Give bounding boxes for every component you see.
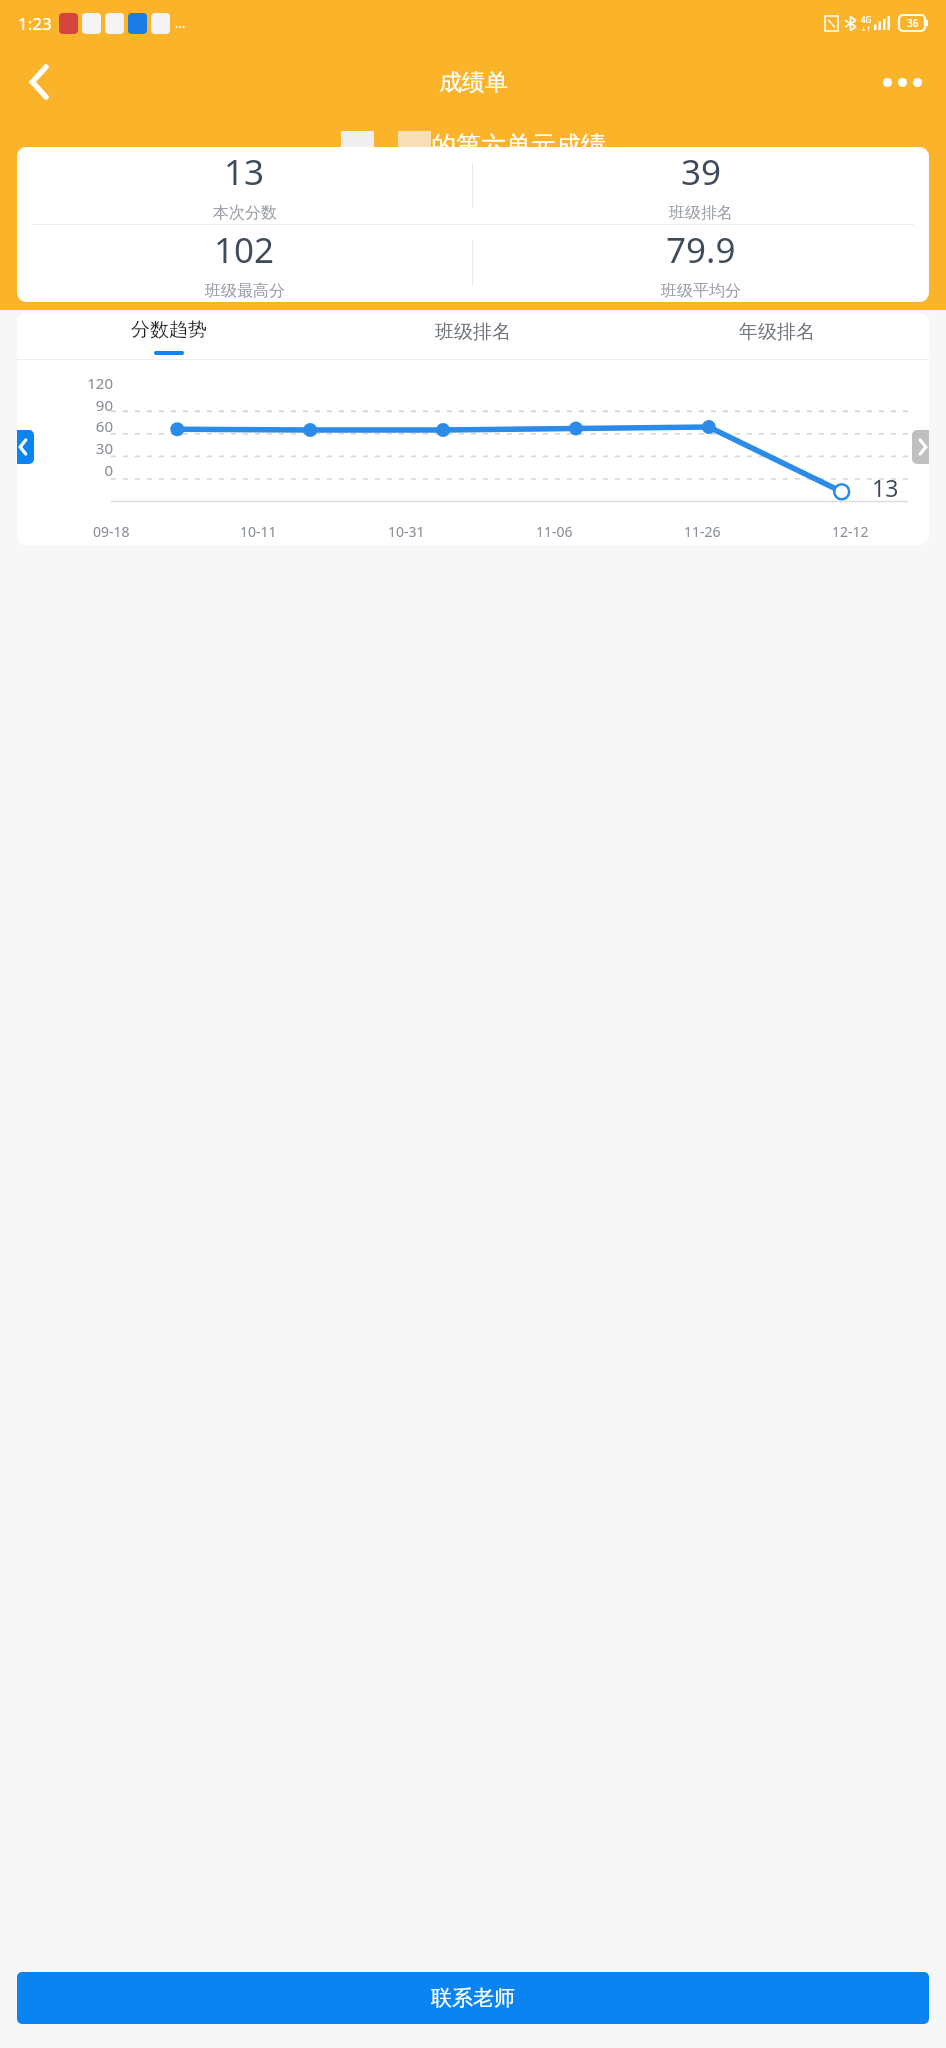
staticText: 年级排名 <box>739 320 815 344</box>
staticText: 10-11 <box>240 522 277 541</box>
button[interactable]: Back <box>14 57 64 107</box>
staticText: 120 <box>87 373 113 393</box>
staticText: 12-12 <box>832 522 869 541</box>
staticText: … <box>175 14 186 32</box>
staticText: 班级最高分 <box>205 281 285 301</box>
staticText: 0 <box>104 460 113 480</box>
staticText: 60 <box>95 416 113 436</box>
button[interactable]: Next <box>912 430 929 464</box>
button[interactable]: 39 <box>473 147 929 224</box>
staticText: 班级排名 <box>669 203 733 223</box>
staticText: 4G <box>861 14 872 25</box>
button[interactable]: 年级排名 <box>625 313 929 359</box>
staticText: 班级平均分 <box>661 281 741 301</box>
button[interactable]: 79.9 <box>473 225 929 302</box>
staticText: 11-26 <box>684 522 721 541</box>
staticText: 班级排名 <box>435 320 511 344</box>
staticText: 10-31 <box>388 522 425 541</box>
staticText: 成绩单 <box>439 68 508 97</box>
button[interactable]: 102 <box>17 225 472 302</box>
staticText: 13 <box>224 148 265 196</box>
staticText: 1:23 <box>18 12 52 35</box>
button[interactable]: 联系老师 <box>17 1972 929 2024</box>
staticText: 11-06 <box>536 522 573 541</box>
staticText: 本次分数 <box>213 203 277 223</box>
button[interactable]: 13 <box>17 147 472 224</box>
staticText: 79.9 <box>666 226 736 274</box>
button[interactable]: 分数趋势 <box>17 313 321 359</box>
staticText: 36 <box>907 16 919 30</box>
staticText: ↓↑ <box>861 25 872 32</box>
staticText: 102 <box>214 226 275 274</box>
staticText: 的第六单元成绩 <box>431 130 606 161</box>
staticText: 90 <box>95 395 113 415</box>
staticText: 分数趋势 <box>131 318 207 342</box>
staticText: 39 <box>681 148 722 196</box>
staticText: 09-18 <box>93 522 130 541</box>
staticText: 联系老师 <box>431 1985 515 2011</box>
button[interactable]: 班级排名 <box>321 313 625 359</box>
staticText: 30 <box>95 438 113 458</box>
button[interactable]: Previous <box>17 430 34 464</box>
button[interactable]: More options <box>872 58 932 106</box>
staticText: 13 <box>872 472 899 503</box>
